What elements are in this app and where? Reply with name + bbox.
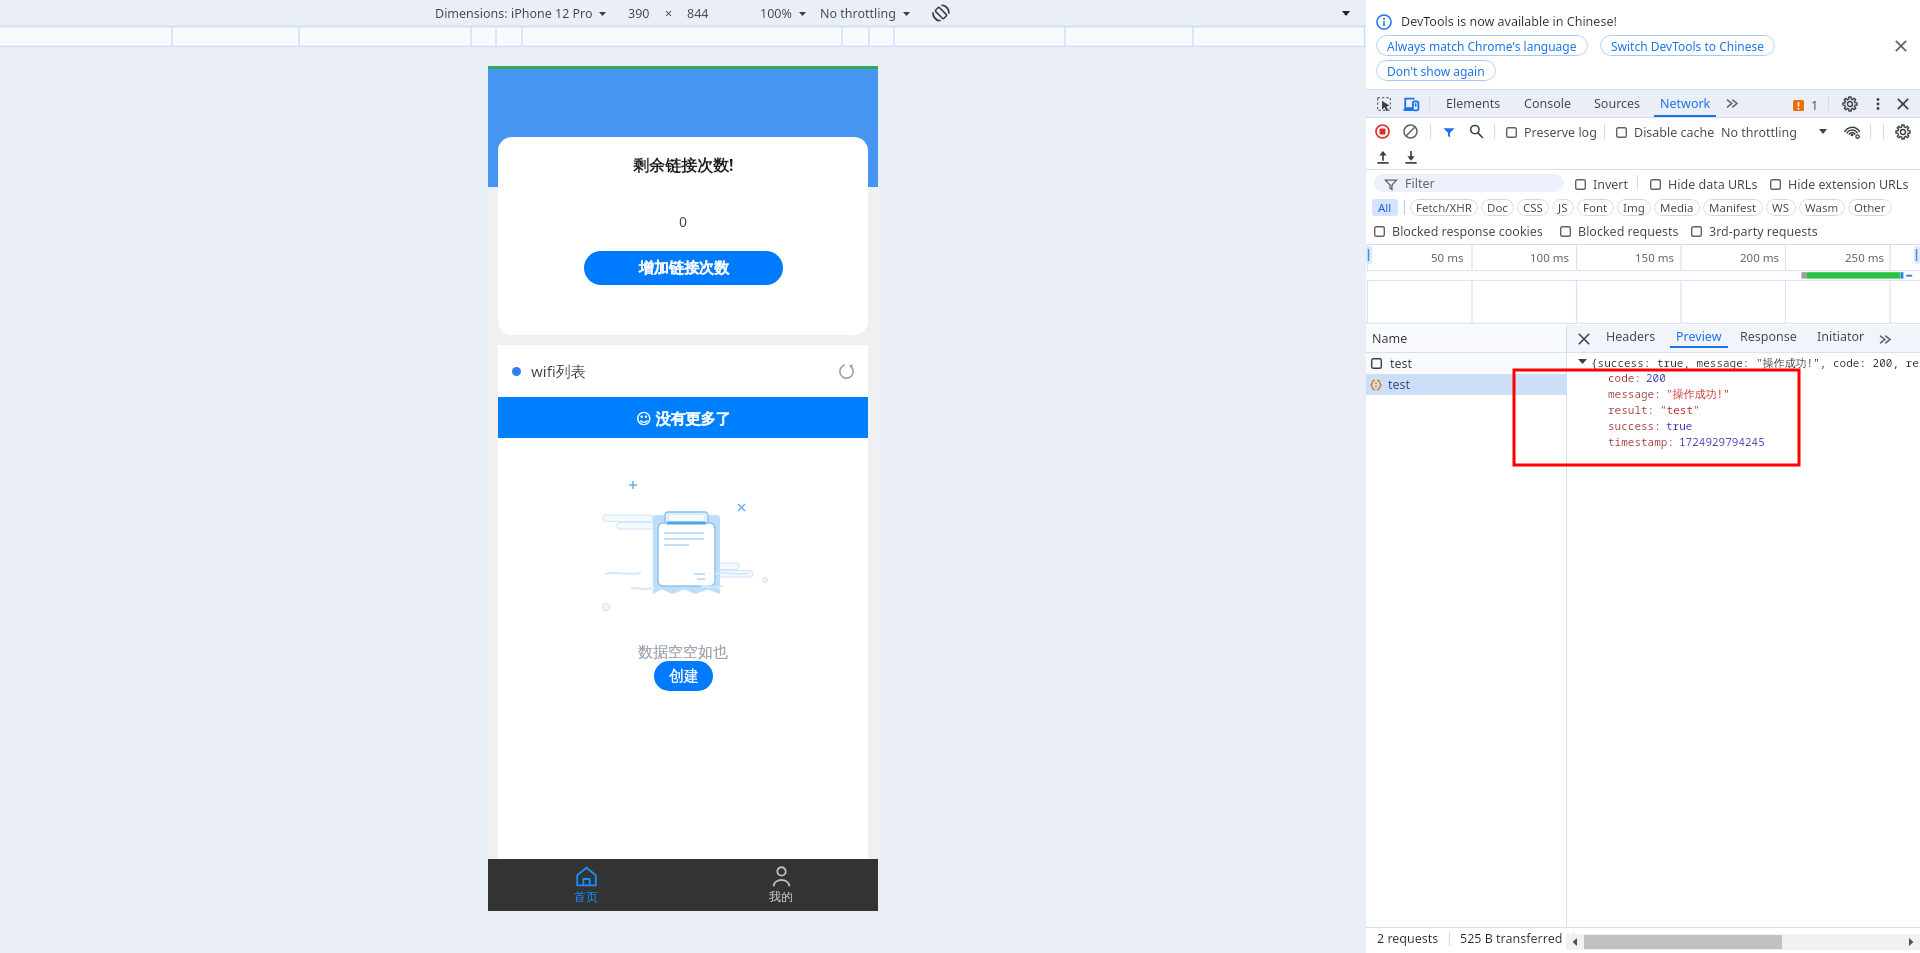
button[interactable]: Export HAR file [1402,148,1419,165]
staticText: success: [1608,418,1661,433]
staticText: test [1390,355,1413,372]
staticText: Wasm [1805,200,1839,216]
staticText: wifi列表 [531,361,586,381]
button[interactable]: No throttling [1721,124,1797,141]
button[interactable]: Wasm [1799,199,1845,216]
button[interactable]: Search [1468,123,1484,139]
button[interactable]: Stop recording network log [1374,123,1391,140]
button[interactable]: Initiator [1811,325,1871,348]
button[interactable]: Response [1735,325,1802,348]
button[interactable]: WS [1766,199,1796,216]
staticText: Headers [1606,328,1656,345]
button[interactable]: More options [1336,3,1356,23]
button[interactable]: Blocked response cookies [1374,223,1543,240]
button[interactable]: Network conditions [1844,123,1861,140]
button[interactable]: 3rd-party requests [1691,223,1818,240]
button[interactable]: Toggle device toolbar [1401,94,1420,113]
button[interactable]: Customize and control DevTools [1868,94,1887,113]
staticText: Preserve log [1524,124,1597,141]
button[interactable]: Rotate device [930,2,952,24]
button[interactable]: Filter [1441,124,1456,139]
button[interactable]: All [1372,199,1398,216]
staticText: × [665,5,673,22]
button[interactable]: Inspect element [1374,94,1393,113]
staticText: Dimensions: iPhone 12 Pro [435,5,593,22]
button[interactable]: Sources [1589,90,1645,117]
staticText: Other [1854,200,1886,216]
button[interactable] [1819,129,1827,134]
button[interactable]: Always match Chrome's language [1376,35,1588,56]
button[interactable]: test [1366,374,1566,395]
button[interactable]: Dimensions: iPhone 12 Pro [435,5,606,22]
button[interactable]: Img [1617,199,1651,216]
button[interactable]: 844 [687,5,709,22]
staticText: 0 [679,212,688,231]
button[interactable]: Preserve log [1506,124,1597,141]
staticText: Hide extension URLs [1788,176,1909,193]
button[interactable]: No throttling [820,5,910,22]
button[interactable]: Hide extension URLs [1770,176,1909,193]
staticText: Response [1740,328,1797,345]
staticText: ☺ 没有更多了 [636,408,731,428]
button[interactable]: Network [1654,90,1716,117]
staticText: WS [1772,200,1790,216]
staticText: 3rd-party requests [1709,223,1818,240]
button[interactable]: Switch DevTools to Chinese [1600,35,1775,56]
staticText: 创建 [669,667,699,686]
staticText: Media [1660,200,1694,216]
button[interactable]: JS [1552,199,1574,216]
button[interactable]: Don't show again [1376,60,1496,81]
staticText: Name [1372,330,1408,347]
button[interactable]: Headers [1599,325,1663,348]
button[interactable]: 390 [628,5,650,22]
button[interactable]: Settings [1840,94,1859,113]
button[interactable]: More tabs [1722,93,1742,113]
staticText: Don't show again [1387,63,1485,79]
staticText: Preview [1676,328,1722,345]
button[interactable]: Invert [1575,176,1629,193]
staticText: 1724929794245 [1679,434,1765,449]
staticText: Fetch/XHR [1416,200,1472,216]
staticText: 数据空空如也 [638,643,728,662]
button[interactable]: Preview [1670,325,1728,348]
button[interactable]: Other [1848,199,1892,216]
button[interactable]: Close panel [1576,331,1592,347]
staticText: Initiator [1817,328,1865,345]
button[interactable]: Elements [1443,90,1504,117]
staticText: 我的 [769,889,793,904]
button[interactable]: 1 [1793,97,1819,114]
button[interactable]: 我的 [683,859,878,911]
button[interactable]: Doc [1481,199,1514,216]
button[interactable]: Close notification [1890,35,1911,56]
staticText: 50 ms [1431,250,1464,266]
staticText: Network [1660,95,1711,112]
staticText: Always match Chrome's language [1387,38,1577,54]
button[interactable]: wifi列表 [512,345,857,397]
button[interactable]: Clear network log [1402,123,1419,140]
button[interactable]: 首页 [488,859,683,911]
button[interactable]: Network settings [1894,123,1911,140]
button[interactable]: Font [1577,199,1614,216]
staticText: 1 [1811,97,1819,114]
button[interactable]: test [1366,353,1566,374]
staticText: test [1388,376,1411,393]
staticText: 增加链接次数 [639,259,729,278]
button[interactable]: Console [1520,90,1576,117]
button[interactable]: Fetch/XHR [1410,199,1478,216]
staticText: Doc [1487,200,1508,216]
button[interactable]: 增加链接次数 [584,251,783,285]
button[interactable]: CSS [1517,199,1549,216]
button[interactable]: Hide data URLs [1650,176,1758,193]
button[interactable]: Close DevTools [1893,94,1912,113]
button[interactable]: Filter [1374,174,1564,192]
button[interactable]: Refresh [835,360,857,382]
button[interactable]: Blocked requests [1560,223,1679,240]
button[interactable]: Import HAR file [1374,148,1391,165]
staticText: No throttling [820,5,896,22]
button[interactable]: Media [1654,199,1700,216]
button[interactable]: Disable cache [1616,124,1715,141]
button[interactable]: 100% [760,5,806,22]
button[interactable]: More tabs [1877,331,1893,347]
button[interactable]: 创建 [654,661,713,691]
button[interactable]: Manifest [1703,199,1763,216]
